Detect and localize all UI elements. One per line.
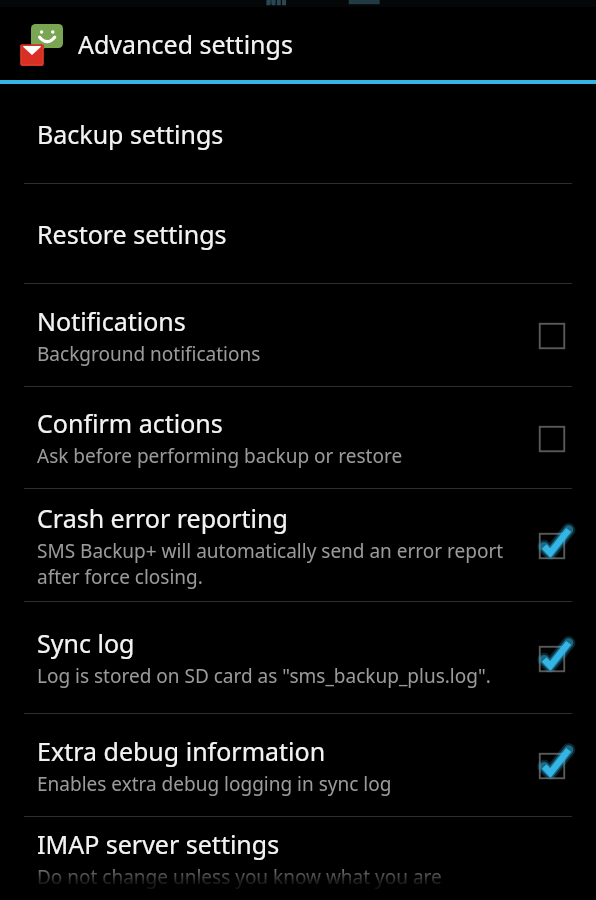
button[interactable]: Crash error reporting — [0, 489, 596, 601]
staticText: Do not change unless you know what you a… — [37, 864, 442, 890]
button[interactable]: SMS Backup Plus — [0, 7, 596, 80]
staticText: Enables extra debug logging in sync log — [37, 771, 392, 797]
button[interactable]: Restore settings — [0, 184, 596, 283]
staticText: IMAP server settings — [37, 827, 280, 861]
button[interactable]: IMAP server settings — [0, 817, 596, 900]
button[interactable]: Notifications — [0, 284, 596, 386]
staticText: Extra debug information — [37, 734, 326, 768]
button[interactable]: Backup settings — [0, 84, 596, 183]
button[interactable]: Crash error reporting checkbox, checked — [526, 519, 578, 571]
button[interactable]: Notifications checkbox, not checked — [526, 309, 578, 361]
staticText: Ask before performing backup or restore — [37, 443, 403, 469]
staticText: Backup settings — [37, 117, 224, 151]
staticText: Confirm actions — [37, 406, 223, 440]
button[interactable]: Sync log checkbox, checked — [526, 632, 578, 684]
staticText: Advanced settings — [78, 27, 293, 61]
staticText: SMS Backup+ will automatically send an e… — [37, 538, 514, 589]
button[interactable]: Confirm actions — [0, 387, 596, 488]
button[interactable]: Confirm actions checkbox, not checked — [526, 412, 578, 464]
button[interactable]: Extra debug information checkbox, checke… — [526, 739, 578, 791]
staticText: Crash error reporting — [37, 501, 288, 535]
staticText: Sync log — [37, 626, 135, 660]
button[interactable]: Extra debug information — [0, 714, 596, 816]
staticText: Restore settings — [37, 217, 227, 251]
staticText: Notifications — [37, 304, 186, 338]
staticText: Background notifications — [37, 341, 261, 367]
other: SMS Backup Plus — [20, 19, 70, 69]
staticText: Log is stored on SD card as "sms_backup_… — [37, 663, 491, 689]
button[interactable]: Sync log — [0, 602, 596, 713]
